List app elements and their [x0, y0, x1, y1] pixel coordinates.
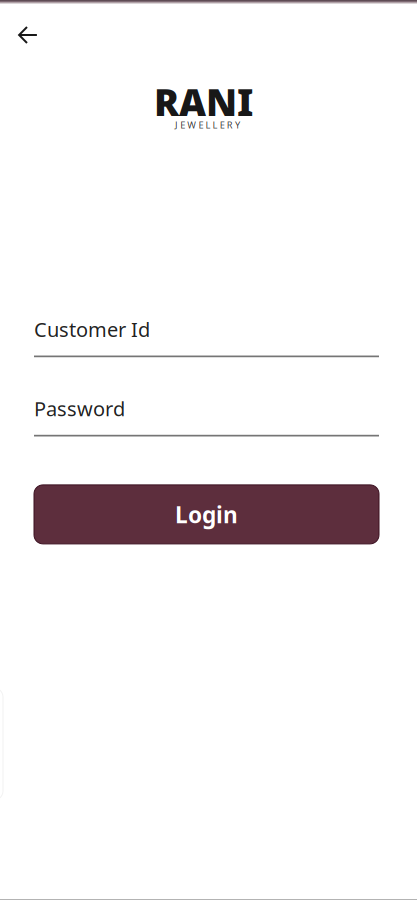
staticText: Customer Id — [34, 316, 150, 343]
staticText: Password — [34, 395, 125, 422]
staticText: RANI — [154, 77, 253, 127]
button[interactable]: Login — [34, 485, 379, 544]
staticText: Login — [175, 499, 238, 529]
staticText: JEWELLERY — [175, 119, 240, 131]
button[interactable]: Back — [9, 16, 47, 54]
